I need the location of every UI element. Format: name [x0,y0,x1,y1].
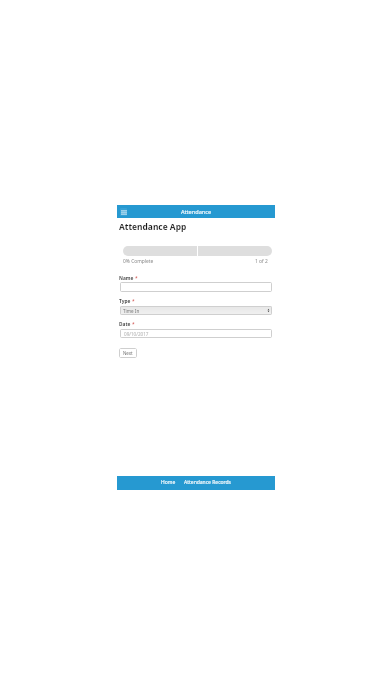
staticText: Type [119,298,131,305]
staticText: 09/10/2017 [124,331,149,337]
button[interactable]: Home [157,475,180,489]
staticText: Time In [123,308,140,314]
button[interactable] [120,282,272,292]
staticText: Attendance [181,208,212,216]
staticText: Name [119,275,134,282]
button[interactable]: 09/10/2017 [120,329,272,338]
staticText: Home [161,479,176,485]
button[interactable]: Time In [120,306,272,315]
staticText: * [135,275,138,282]
staticText: 1 of 2 [255,258,268,265]
staticText: Attendance App [119,221,187,232]
button[interactable]: Attendance Records [180,475,235,489]
staticText: Next [123,350,133,356]
staticText: * [132,298,135,305]
button[interactable]: Menu [120,208,127,216]
staticText: Attendance Records [184,479,231,485]
button[interactable]: Next [119,348,137,358]
staticText: * [132,321,135,328]
staticText: 0% Complete [123,258,154,265]
staticText: Date [119,321,131,328]
